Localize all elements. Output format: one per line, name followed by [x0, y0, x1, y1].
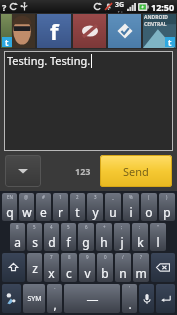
staticText: ? [2, 1, 7, 13]
button[interactable]: : [132, 223, 148, 251]
staticText: h [100, 234, 108, 250]
staticText: + [103, 224, 106, 230]
staticText: q [6, 204, 14, 220]
staticText: / [122, 254, 124, 260]
staticText: p [163, 204, 171, 220]
staticText: # [42, 194, 45, 200]
button[interactable]: 3 [87, 193, 103, 221]
button[interactable]: 6 [78, 223, 94, 251]
button[interactable]: ? [133, 253, 149, 282]
staticText: ' [129, 285, 131, 291]
button[interactable]: ; [114, 223, 130, 251]
staticText: n [119, 265, 127, 281]
staticText: @ [24, 194, 29, 200]
staticText: 123 [75, 165, 91, 177]
button[interactable]: ( [141, 193, 157, 221]
staticText: x [48, 265, 55, 281]
staticText: 8 [68, 254, 71, 260]
staticText: _ [112, 194, 114, 200]
staticText: ) [166, 194, 168, 200]
staticText: y [92, 204, 99, 220]
staticText: u [109, 204, 117, 220]
staticText: Send [123, 164, 149, 179]
staticText: f [66, 234, 71, 250]
button[interactable]: Facebook [37, 14, 71, 48]
staticText: v [84, 265, 91, 281]
button[interactable]: EN [2, 193, 17, 221]
button[interactable]: % [123, 193, 139, 221]
staticText: CENTRAL [144, 21, 167, 28]
staticText: 5 [67, 224, 70, 230]
staticText: 12:50 [151, 1, 175, 13]
button[interactable]: Backspace [151, 253, 175, 282]
staticText: EN [7, 194, 13, 200]
button[interactable]: 2 [70, 193, 85, 221]
button[interactable]: Shift [2, 253, 25, 282]
button[interactable]: 1 [53, 193, 68, 221]
button[interactable]: Twitter account [1, 14, 35, 48]
button[interactable]: Foursquare [108, 14, 141, 48]
button[interactable]: z [27, 253, 42, 282]
button[interactable]: Android Central [143, 14, 176, 48]
button[interactable]: 4 [44, 223, 59, 251]
button[interactable]: SYM [23, 284, 45, 313]
button[interactable]: @ [19, 193, 34, 221]
staticText: i [129, 204, 133, 220]
button[interactable]: _ [105, 193, 121, 221]
staticText: k [137, 234, 144, 250]
staticText: SYM [27, 294, 42, 304]
staticText: . [128, 296, 132, 312]
staticText: 6 [85, 224, 88, 230]
staticText: ANDROID [144, 14, 169, 21]
button[interactable]: Testing. Testing. [4, 51, 173, 151]
staticText: z [32, 260, 38, 276]
staticText: ; [121, 224, 123, 230]
button[interactable]: 7 [44, 253, 59, 282]
button[interactable]: 0 [97, 253, 113, 282]
button[interactable]: # [36, 193, 51, 221]
button[interactable]: 8 [61, 253, 77, 282]
button[interactable]: — [64, 284, 120, 313]
staticText: f [50, 16, 59, 46]
button[interactable]: 9 [79, 253, 95, 282]
button[interactable]: / [115, 253, 131, 282]
staticText: c [66, 265, 72, 281]
staticText: s [32, 234, 38, 250]
staticText: d [48, 234, 56, 250]
staticText: e [40, 204, 47, 220]
staticText: t [168, 37, 172, 47]
button[interactable]: More options [5, 155, 41, 187]
button[interactable]: Voice input [139, 284, 154, 313]
staticText: m [135, 265, 147, 281]
staticText: b [101, 265, 109, 281]
staticText: j [120, 234, 124, 250]
staticText: 4 [50, 224, 53, 230]
staticText: a [14, 234, 21, 250]
button[interactable]: " [150, 223, 166, 251]
button[interactable]: 5 [27, 223, 42, 251]
button[interactable]: Messaging [73, 14, 106, 48]
staticText: Testing. Testing. [7, 53, 91, 68]
button[interactable]: + [96, 223, 112, 251]
staticText: o [145, 204, 153, 220]
button[interactable]: Send [100, 155, 172, 187]
staticText: g [82, 234, 90, 250]
button[interactable]: Input method [2, 284, 21, 313]
button[interactable]: 5 [61, 223, 76, 251]
staticText: ? [140, 254, 142, 260]
staticText: r [58, 204, 63, 220]
staticText: 7 [50, 254, 53, 260]
button[interactable]: - [47, 284, 62, 313]
staticText: % [129, 194, 133, 200]
staticText: , [53, 296, 57, 312]
staticText: 8 [16, 224, 19, 230]
staticText: " [157, 224, 159, 230]
button[interactable]: Enter [156, 284, 175, 313]
button[interactable]: ' [122, 284, 137, 313]
staticText: t [75, 204, 80, 220]
staticText: 2 [76, 194, 79, 200]
button[interactable]: ) [159, 193, 175, 221]
staticText: ( [148, 194, 150, 200]
button[interactable]: 8 [10, 223, 25, 251]
staticText: 5 [33, 224, 36, 230]
